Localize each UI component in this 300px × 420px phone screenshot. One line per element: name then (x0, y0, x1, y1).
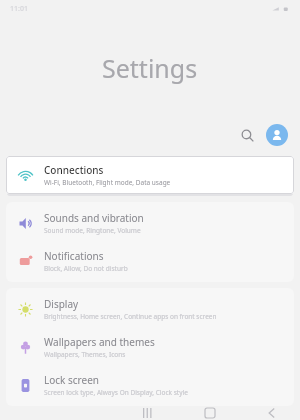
staticText: Block, Allow, Do not disturb (44, 264, 128, 273)
button[interactable]: Recent apps (128, 406, 168, 420)
button[interactable]: Sounds and vibration (6, 204, 294, 242)
staticText: Wi-Fi, Bluetooth, Flight mode, Data usag… (44, 178, 171, 187)
staticText: Wallpapers, Themes, Icons (44, 350, 126, 359)
button[interactable]: Notifications (6, 242, 294, 280)
staticText: 11:01 (10, 4, 28, 14)
staticText: Connections (44, 163, 104, 177)
button[interactable]: Back (252, 406, 292, 420)
staticText: Screen lock type, Always On Display, Clo… (44, 388, 188, 397)
button[interactable]: Account (266, 124, 288, 146)
staticText: Notifications (44, 249, 104, 263)
staticText: Display (44, 297, 79, 311)
staticText: Brightness, Home screen, Continue apps o… (44, 312, 217, 321)
staticText: Sounds and vibration (44, 211, 144, 225)
staticText: Sound mode, Ringtone, Volume (44, 226, 141, 235)
button[interactable]: Search (234, 122, 260, 148)
button[interactable]: Display (6, 290, 294, 328)
staticText: Lock screen (44, 373, 100, 387)
button[interactable]: Wallpapers and themes (6, 328, 294, 366)
button[interactable]: Connections (6, 156, 294, 194)
staticText: Settings (102, 51, 198, 85)
button[interactable]: Lock screen (6, 366, 294, 404)
staticText: Wallpapers and themes (44, 335, 155, 349)
button[interactable]: Home (190, 406, 230, 420)
